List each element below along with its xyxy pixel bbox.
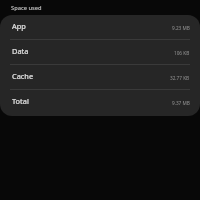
staticText: 9.37 MB: [172, 100, 190, 106]
button[interactable]: App: [0, 15, 200, 40]
staticText: 106 KB: [174, 50, 190, 56]
button[interactable]: Cache: [0, 65, 200, 90]
staticText: App: [12, 21, 26, 31]
button[interactable]: Data: [0, 40, 200, 65]
staticText: Data: [12, 46, 29, 56]
button[interactable]: Total: [0, 90, 200, 116]
staticText: Total: [12, 96, 29, 106]
staticText: Cache: [12, 71, 34, 81]
staticText: 32.77 KB: [170, 75, 190, 81]
staticText: Space used: [11, 4, 42, 12]
staticText: 9.23 MB: [172, 25, 190, 31]
